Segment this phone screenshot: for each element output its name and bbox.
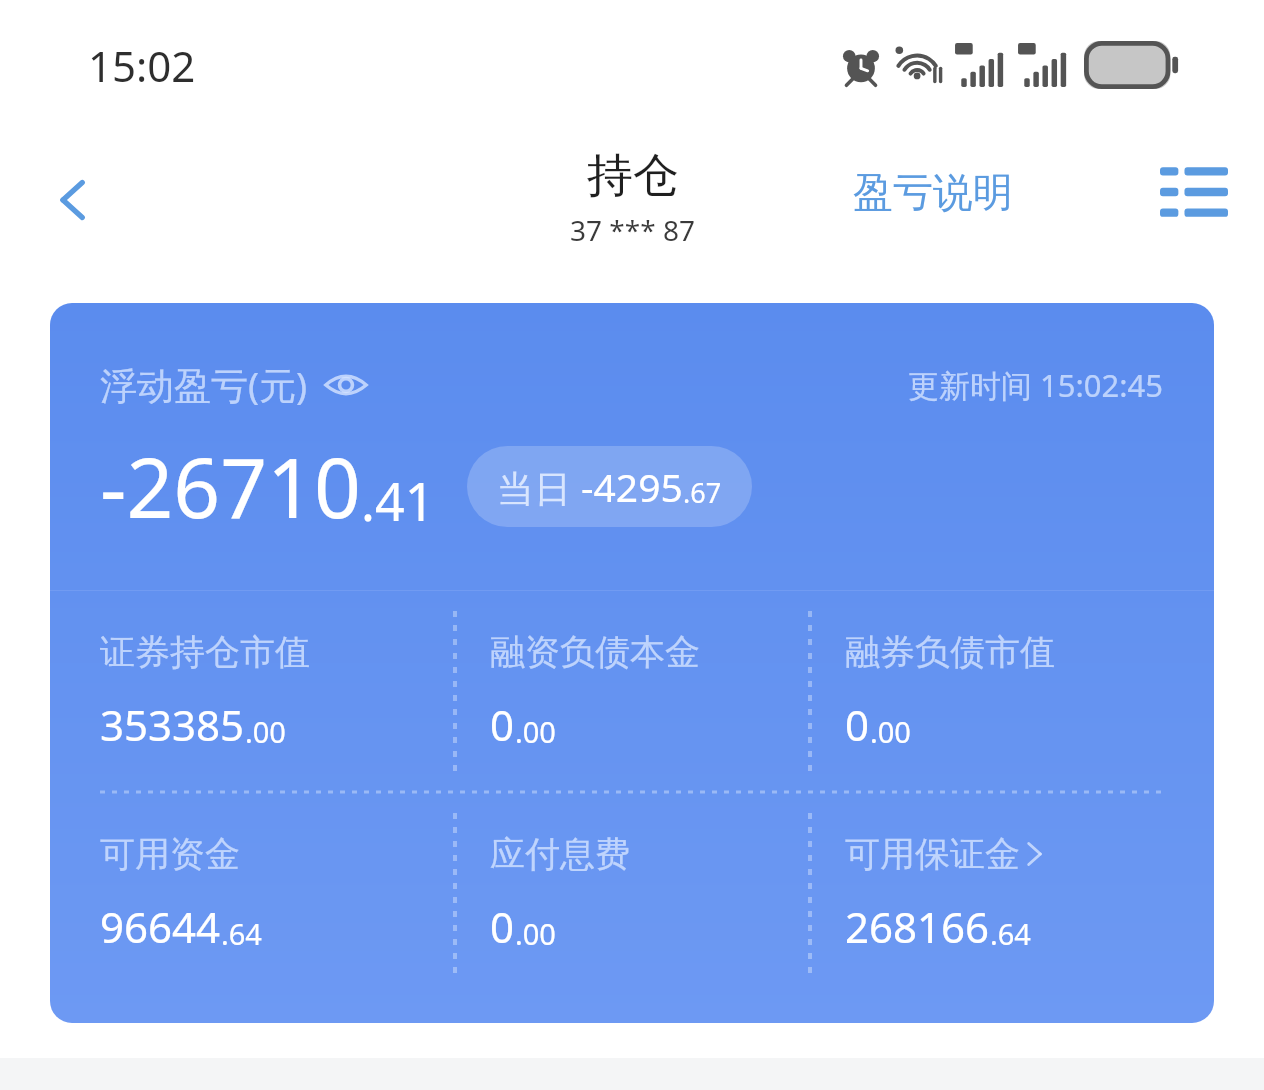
staticText: .41 <box>361 465 435 536</box>
staticText: .00 <box>245 712 286 751</box>
staticText: -4295 <box>581 460 683 513</box>
staticText: 268166 <box>845 898 990 955</box>
staticText: .00 <box>515 914 556 953</box>
staticText: 更新时间 15:02:45 <box>908 364 1164 406</box>
staticText: .64 <box>221 914 262 953</box>
staticText: 可用保证金 <box>845 832 1020 876</box>
staticText: 融资负债本金 <box>490 630 700 674</box>
staticText: 当日 <box>497 462 581 513</box>
button[interactable]: 浮动盈亏(元) <box>50 303 1214 1023</box>
staticText: 浮动盈亏(元) <box>100 359 308 410</box>
button[interactable]: Toggle visibility <box>324 363 368 407</box>
staticText: 证券持仓市值 <box>100 630 310 674</box>
staticText: 盈亏说明 <box>853 167 1013 217</box>
button[interactable]: 当日 <box>467 446 752 527</box>
staticText: -26710 <box>100 430 361 542</box>
staticText: .00 <box>515 712 556 751</box>
staticText: .67 <box>683 474 722 511</box>
staticText: 15:02 <box>88 37 196 94</box>
staticText: 353385 <box>100 696 245 753</box>
staticText: 持仓 <box>587 147 679 205</box>
staticText: .00 <box>870 712 911 751</box>
button[interactable]: List view <box>1146 144 1242 240</box>
staticText: 可用资金 <box>100 832 240 876</box>
button[interactable]: 可用保证金 <box>809 793 1164 993</box>
staticText: 融券负债市值 <box>845 630 1055 674</box>
staticText: 0 <box>490 898 515 955</box>
staticText: 应付息费 <box>490 832 630 876</box>
button[interactable]: Back <box>24 150 124 250</box>
staticText: 0 <box>490 696 515 753</box>
staticText: 0 <box>845 696 870 753</box>
button[interactable]: 盈亏说明 <box>845 157 1021 227</box>
staticText: 37 *** 87 <box>570 211 695 249</box>
staticText: .64 <box>990 914 1031 953</box>
staticText: 96644 <box>100 898 221 955</box>
